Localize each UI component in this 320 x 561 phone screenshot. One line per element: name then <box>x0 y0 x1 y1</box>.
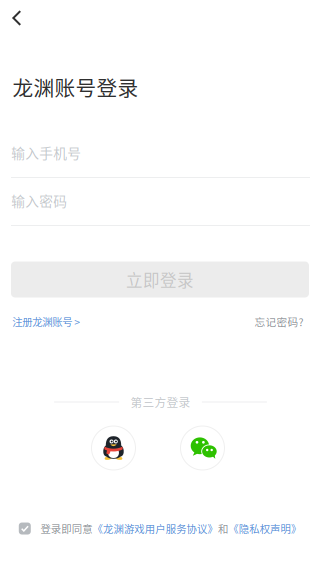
button[interactable]: 立即登录 <box>11 261 309 297</box>
button[interactable]: 注册龙渊账号 > <box>12 314 80 329</box>
button[interactable]: QQ 登录 <box>91 426 135 470</box>
staticText: 立即登录 <box>126 267 194 291</box>
button[interactable]: 同意用户协议 <box>19 522 31 534</box>
staticText: 注册龙渊账号 > <box>12 314 80 329</box>
staticText: 龙渊账号登录 <box>13 72 139 102</box>
button[interactable]: 忘记密码? <box>254 314 303 329</box>
staticText: 第三方登录 <box>130 393 190 410</box>
staticText: 登录即同意《龙渊游戏用户服务协议》和《隐私权声明》 <box>40 521 301 536</box>
button[interactable]: 返回 <box>1 2 33 34</box>
staticText: 输入密码 <box>11 190 67 210</box>
button[interactable]: 微信登录 <box>180 426 224 470</box>
staticText: 忘记密码? <box>254 314 303 329</box>
staticText: 输入手机号 <box>11 142 81 162</box>
